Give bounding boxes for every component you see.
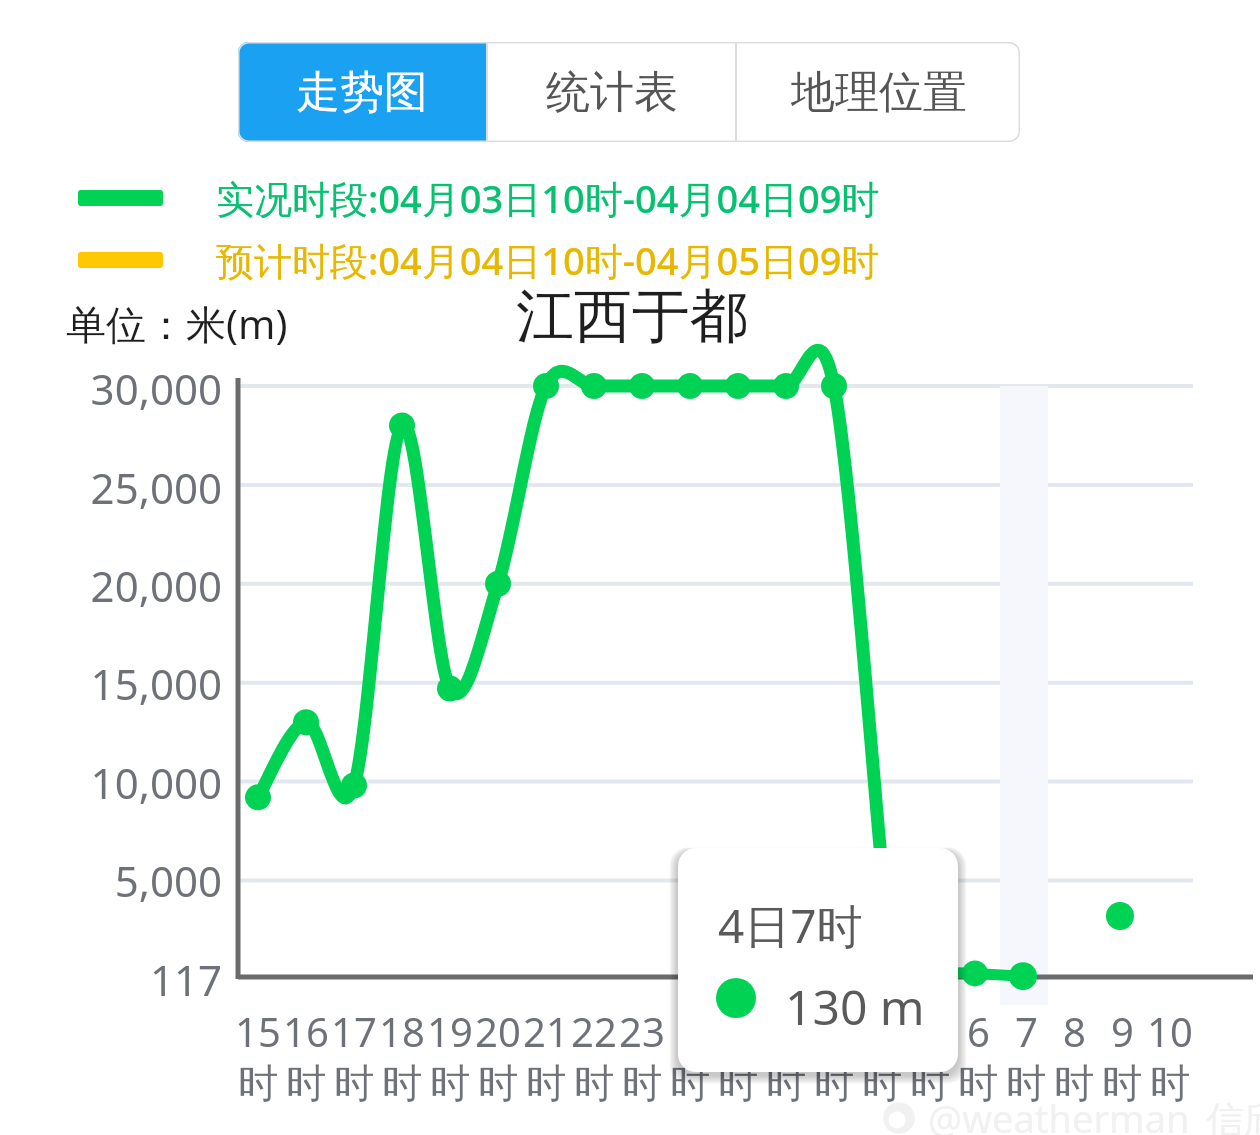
staticText: 时 xyxy=(622,1058,662,1108)
staticText: 18 xyxy=(379,1004,425,1058)
staticText: 时 xyxy=(478,1058,518,1108)
staticText: 时 xyxy=(334,1058,374,1108)
staticText: 5,000 xyxy=(40,852,222,909)
button[interactable]: 地理位置 xyxy=(737,42,1020,142)
staticText: 走势图 xyxy=(296,65,428,120)
staticText: 时 xyxy=(766,1058,806,1108)
staticText: 10 xyxy=(1147,1004,1193,1058)
staticText: 时 xyxy=(814,1058,854,1108)
staticText: 地理位置 xyxy=(791,65,967,120)
staticText: 时 xyxy=(1150,1058,1190,1108)
staticText: 117 xyxy=(40,951,222,1008)
staticText: 7 xyxy=(1015,1004,1038,1058)
staticText: 统计表 xyxy=(546,65,678,120)
button[interactable]: 走势图 xyxy=(238,42,486,142)
staticText: 9 xyxy=(1111,1004,1134,1058)
staticText: 23 xyxy=(619,1004,665,1058)
staticText: 时 xyxy=(718,1058,758,1108)
staticText: 时 xyxy=(430,1058,470,1108)
staticText: 21 xyxy=(523,1004,569,1058)
staticText: 20 xyxy=(475,1004,521,1058)
staticText: 江西于都 xyxy=(516,280,748,353)
staticText: 15,000 xyxy=(40,655,222,712)
staticText: 25,000 xyxy=(40,459,222,516)
staticText: 实况时段:04月03日10时-04月04日09时 xyxy=(216,172,880,224)
staticText: 4 xyxy=(871,1004,894,1058)
staticText: 时 xyxy=(526,1058,566,1108)
staticText: 17 xyxy=(331,1004,377,1058)
staticText: 5 xyxy=(919,1004,942,1058)
staticText: 时 xyxy=(1054,1058,1094,1108)
staticText: 预计时段:04月04日10时-04月05日09时 xyxy=(216,234,880,286)
staticText: 3 xyxy=(823,1004,846,1058)
staticText: 130 m xyxy=(785,974,925,1039)
staticText: 1 xyxy=(727,1004,750,1058)
staticText: 时 xyxy=(382,1058,422,1108)
staticText: 时 xyxy=(574,1058,614,1108)
staticText: 时 xyxy=(910,1058,950,1108)
staticText: 22 xyxy=(571,1004,617,1058)
staticText: 10,000 xyxy=(40,754,222,811)
staticText: @weatherman_信欣 xyxy=(928,1092,1260,1135)
staticText: 6 xyxy=(967,1004,990,1058)
staticText: 20,000 xyxy=(40,557,222,614)
staticText: 时 xyxy=(1006,1058,1046,1108)
staticText: 时 xyxy=(1102,1058,1142,1108)
staticText: 19 xyxy=(427,1004,473,1058)
staticText: 时 xyxy=(862,1058,902,1108)
staticText: 时 xyxy=(286,1058,326,1108)
staticText: 16 xyxy=(283,1004,329,1058)
staticText: 时 xyxy=(238,1058,278,1108)
other: Weibo xyxy=(880,1099,918,1135)
button[interactable]: 统计表 xyxy=(488,42,735,142)
staticText: 时 xyxy=(670,1058,710,1108)
staticText: 单位：米(m) xyxy=(66,296,288,351)
staticText: 8 xyxy=(1063,1004,1086,1058)
staticText: 4日7时 xyxy=(718,894,863,957)
button[interactable]: 4日7时 xyxy=(678,848,958,1072)
staticText: 时 xyxy=(958,1058,998,1108)
staticText: 30,000 xyxy=(40,360,222,417)
staticText: 15 xyxy=(235,1004,281,1058)
